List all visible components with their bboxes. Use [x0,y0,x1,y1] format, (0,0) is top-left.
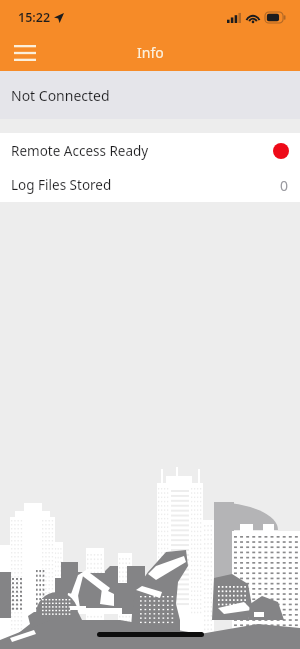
staticText: Log Files Stored [11,176,112,194]
staticText: 15:22 [18,9,51,26]
button[interactable]: Remote Access Ready [0,133,300,168]
staticText: Remote Access Ready [11,142,149,160]
button[interactable]: Log Files Stored [0,168,300,202]
button[interactable]: Open navigation menu [7,35,43,71]
staticText: Not Connected [11,86,110,105]
staticText: Info [137,43,164,62]
staticText: 0 [280,176,289,195]
